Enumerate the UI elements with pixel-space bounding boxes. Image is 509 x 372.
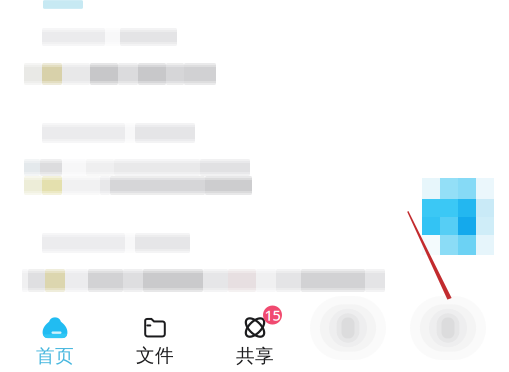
staticText: 文件 <box>136 344 174 367</box>
staticText: 15 <box>264 305 280 325</box>
button[interactable]: 文件 <box>105 302 205 372</box>
staticText: 首页 <box>36 344 74 367</box>
button[interactable]: 15 <box>205 302 305 372</box>
button[interactable]: 首页 <box>5 302 105 372</box>
staticText: 共享 <box>236 344 274 367</box>
